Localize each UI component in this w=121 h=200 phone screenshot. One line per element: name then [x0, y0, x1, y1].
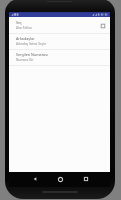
staticText: Alıcı Falları: [16, 26, 32, 30]
staticText: Arkadaşlar: [16, 36, 35, 41]
staticText: Arkadaş listesi Seçin: [16, 42, 47, 46]
button[interactable]: Recent apps: [78, 173, 94, 185]
button[interactable]: Seç: [9, 18, 110, 34]
staticText: Sergilen Numarası: [16, 52, 48, 57]
button[interactable]: Toggle: [100, 23, 106, 29]
staticText: Numara Gir: [16, 58, 34, 62]
button[interactable]: Arkadaşlar: [9, 34, 110, 50]
staticText: Seç: [16, 20, 22, 25]
button[interactable]: Back: [27, 173, 43, 185]
button[interactable]: Home: [52, 173, 68, 185]
button[interactable]: Sergilen Numarası: [9, 50, 110, 66]
